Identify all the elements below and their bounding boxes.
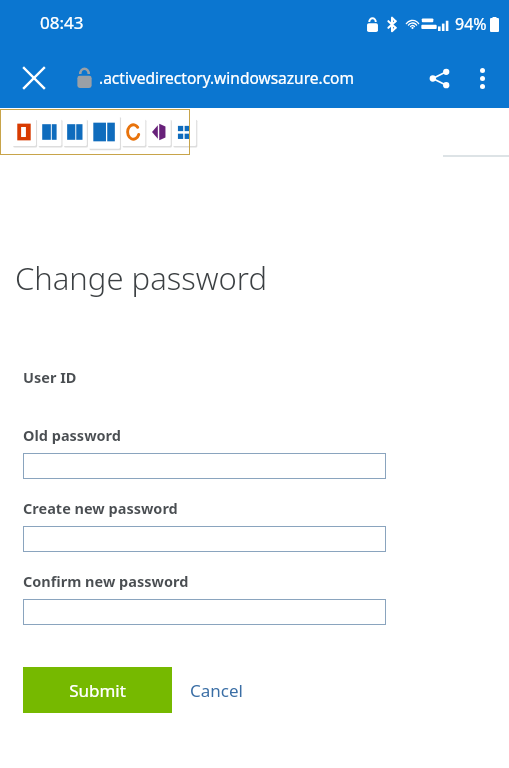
staticText: Change password: [15, 257, 267, 299]
button[interactable]: Close: [12, 56, 56, 100]
button[interactable]: More options: [460, 56, 504, 100]
staticText: Create new password: [23, 498, 178, 518]
staticText: 94%: [455, 13, 487, 35]
staticText: Cancel: [190, 679, 243, 702]
button[interactable]: Share: [417, 56, 461, 100]
staticText: .activedirectory.windowsazure.com: [99, 67, 354, 88]
button[interactable]: [23, 599, 386, 625]
button[interactable]: [23, 453, 386, 479]
staticText: Old password: [23, 425, 121, 445]
button[interactable]: Cancel: [190, 667, 243, 713]
button[interactable]: Submit: [23, 667, 172, 713]
staticText: Confirm new password: [23, 571, 189, 591]
button[interactable]: [23, 526, 386, 552]
staticText: User ID: [23, 367, 77, 387]
staticText: 08:43: [40, 11, 84, 34]
staticText: Submit: [69, 679, 126, 702]
